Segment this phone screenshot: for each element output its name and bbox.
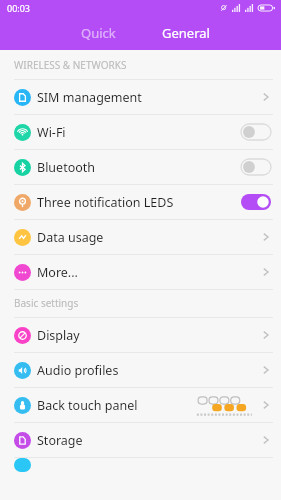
staticText: WIRELESS & NETWORKS (14, 58, 127, 72)
staticText: Data usage (37, 229, 104, 246)
staticText: 00:03 (7, 2, 31, 14)
staticText: Bluetooth (37, 159, 96, 176)
button[interactable]: Three notification LEDS (0, 185, 281, 219)
staticText: Storage (37, 432, 83, 449)
staticText: Back touch panel (37, 397, 138, 414)
button[interactable]: Quick (56, 16, 140, 50)
staticText: Three notification LEDS (37, 194, 174, 211)
button[interactable]: SIM management (0, 80, 281, 114)
button[interactable]: Display (0, 318, 281, 352)
button[interactable] (241, 194, 271, 210)
staticText: Display (37, 327, 80, 344)
staticText: Audio profiles (37, 362, 119, 379)
button[interactable] (241, 159, 271, 175)
button[interactable]: Data usage (0, 220, 281, 254)
staticText: Wi-Fi (37, 124, 66, 141)
button[interactable]: General (140, 16, 232, 50)
staticText: SIM management (37, 89, 142, 106)
staticText: Quick (81, 24, 116, 42)
button[interactable]: Storage (0, 423, 281, 457)
staticText: General (162, 24, 210, 42)
button[interactable]: Audio profiles (0, 353, 281, 387)
button[interactable]: Wi-Fi (0, 115, 281, 149)
button[interactable] (241, 124, 271, 140)
staticText: More... (37, 264, 78, 281)
staticText: Basic settings (14, 296, 79, 310)
button[interactable]: Bluetooth (0, 150, 281, 184)
button[interactable]: Back touch panel (0, 388, 281, 422)
button[interactable]: More... (0, 255, 281, 289)
